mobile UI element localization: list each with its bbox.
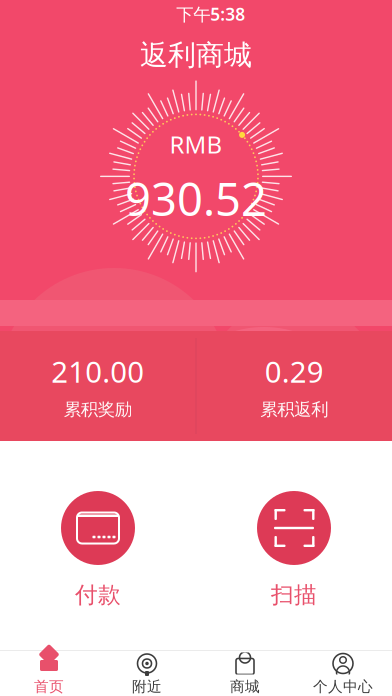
button[interactable]: 扫描 [196,485,392,615]
button[interactable]: 商城 [196,647,294,696]
staticText: RMB [169,128,222,160]
staticText: 累积返利 [260,399,328,420]
staticText: 930.52 [125,168,267,228]
staticText: 下午5:38 [176,2,245,25]
staticText: 累积奖励 [64,399,132,420]
staticText: 个人中心 [313,677,373,695]
staticText: 返利商城 [140,38,252,72]
staticText: 210.00 [51,352,144,391]
staticText: 附近 [132,677,162,695]
staticText: 0.29 [265,352,324,391]
button[interactable]: 个人中心 [294,647,392,696]
staticText: 首页 [34,677,64,695]
staticText: 扫描 [271,581,317,609]
button[interactable]: 付款 [0,485,196,615]
button[interactable]: 附近 [98,647,196,696]
staticText: 付款 [75,581,121,609]
staticText: 商城 [230,677,260,695]
button[interactable]: 首页 [0,647,98,696]
